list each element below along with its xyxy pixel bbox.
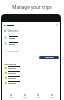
button[interactable]: Tab	[33, 91, 42, 100]
button[interactable]: Itinerary	[4, 29, 58, 32]
button[interactable]	[2, 75, 60, 80]
button[interactable]: Tab	[47, 91, 56, 100]
button[interactable]	[2, 34, 60, 40]
staticText: Itinerary	[8, 29, 19, 32]
button[interactable]: Tab	[20, 91, 29, 100]
button[interactable]	[2, 65, 60, 70]
staticText: Add trip	[45, 56, 54, 59]
button[interactable]	[2, 40, 60, 46]
button[interactable]: Menu	[4, 24, 6, 26]
button[interactable]	[2, 70, 60, 75]
button[interactable]: Tab	[6, 91, 15, 100]
staticText: Trip details	[7, 49, 20, 52]
staticText: Upcoming	[4, 62, 17, 65]
staticText: Manage your trips	[12, 4, 52, 10]
button[interactable]: Add trip	[39, 56, 59, 59]
button[interactable]	[2, 80, 60, 85]
